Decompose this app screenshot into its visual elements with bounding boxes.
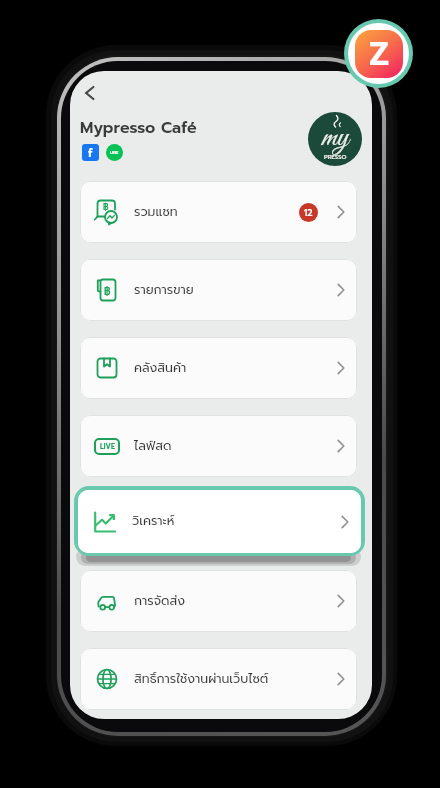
staticText: Mypresso Café — [80, 116, 197, 140]
button[interactable]: การจัดส่ง — [80, 570, 357, 632]
staticText: คลังสินค้า — [134, 358, 187, 377]
staticText: วิเคราะห์ — [132, 511, 175, 530]
staticText: ฿ — [103, 201, 109, 214]
button[interactable]: f — [82, 144, 99, 161]
staticText: รายการขาย — [134, 280, 194, 299]
button[interactable]: LIVE — [80, 415, 357, 477]
button[interactable]: Z — [355, 30, 403, 78]
staticText: รวมแชท — [134, 202, 178, 221]
button[interactable] — [84, 87, 96, 99]
button[interactable]: วิเคราะห์ — [78, 490, 361, 553]
staticText: PRESSO — [324, 152, 347, 161]
staticText: my — [322, 119, 349, 157]
staticText: ไลฟ์สด — [134, 436, 172, 455]
staticText: LIVE — [100, 441, 115, 452]
staticText: ฿ — [104, 284, 111, 299]
staticText: Z — [369, 30, 390, 77]
button[interactable]: ฿ — [80, 259, 357, 321]
staticText: การจัดส่ง — [134, 591, 185, 610]
button[interactable]: คลังสินค้า — [80, 337, 357, 399]
staticText: f — [88, 144, 93, 161]
button[interactable]: ฿ — [80, 181, 357, 243]
staticText: สิทธิ์การใช้งานผ่านเว็บไซต์ — [134, 669, 269, 688]
button[interactable]: สิทธิ์การใช้งานผ่านเว็บไซต์ — [80, 648, 357, 710]
button[interactable]: LINE — [106, 144, 123, 161]
staticText: 12 — [304, 206, 313, 220]
staticText: LINE — [110, 150, 119, 156]
